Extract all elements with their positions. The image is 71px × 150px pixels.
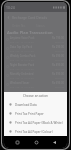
staticText: Print Tax A4 Paper (Black & White) xyxy=(15,121,63,125)
button[interactable]: Home xyxy=(31,137,41,147)
staticText: Anytime Voice Pack xyxy=(10,36,35,40)
button[interactable]: Recents xyxy=(12,137,22,147)
staticText: Data Top Up Pack xyxy=(10,45,33,49)
staticText: Monthly Unlimited xyxy=(10,72,34,76)
staticText: Recharge Card Details xyxy=(12,15,48,20)
staticText: Night Booster Pack xyxy=(10,63,35,67)
staticText: Rs 499.00 xyxy=(52,63,65,67)
staticText: 10:24 xyxy=(6,5,15,10)
staticText: Rs 599.00 xyxy=(52,72,65,76)
staticText: Weekly Combo Pack xyxy=(10,54,36,58)
button[interactable]: Print Tax A4 Paper (Colour) xyxy=(4,127,67,136)
button[interactable]: Print Tax A4 Paper (Black & White) xyxy=(4,118,67,127)
staticText: Audio Plan Transaction xyxy=(7,30,53,35)
button[interactable]: Download Data xyxy=(4,100,67,109)
staticText: Print Tax Print Paper xyxy=(15,112,44,116)
staticText: Rs 399.00 xyxy=(52,54,65,58)
button[interactable]: Back xyxy=(49,137,59,147)
staticText: Weekend Saver xyxy=(10,81,30,85)
staticText: Print Tax A4 Paper (Colour) xyxy=(15,130,53,134)
staticText: Rs 299.00 xyxy=(52,45,65,49)
staticText: Download Data xyxy=(15,103,37,107)
staticText: Rs 699.00 xyxy=(52,81,65,85)
staticText: Choose an action xyxy=(23,94,49,98)
staticText: Rs 199.00 xyxy=(52,36,65,40)
button[interactable]: Print Tax Print Paper xyxy=(4,109,67,118)
